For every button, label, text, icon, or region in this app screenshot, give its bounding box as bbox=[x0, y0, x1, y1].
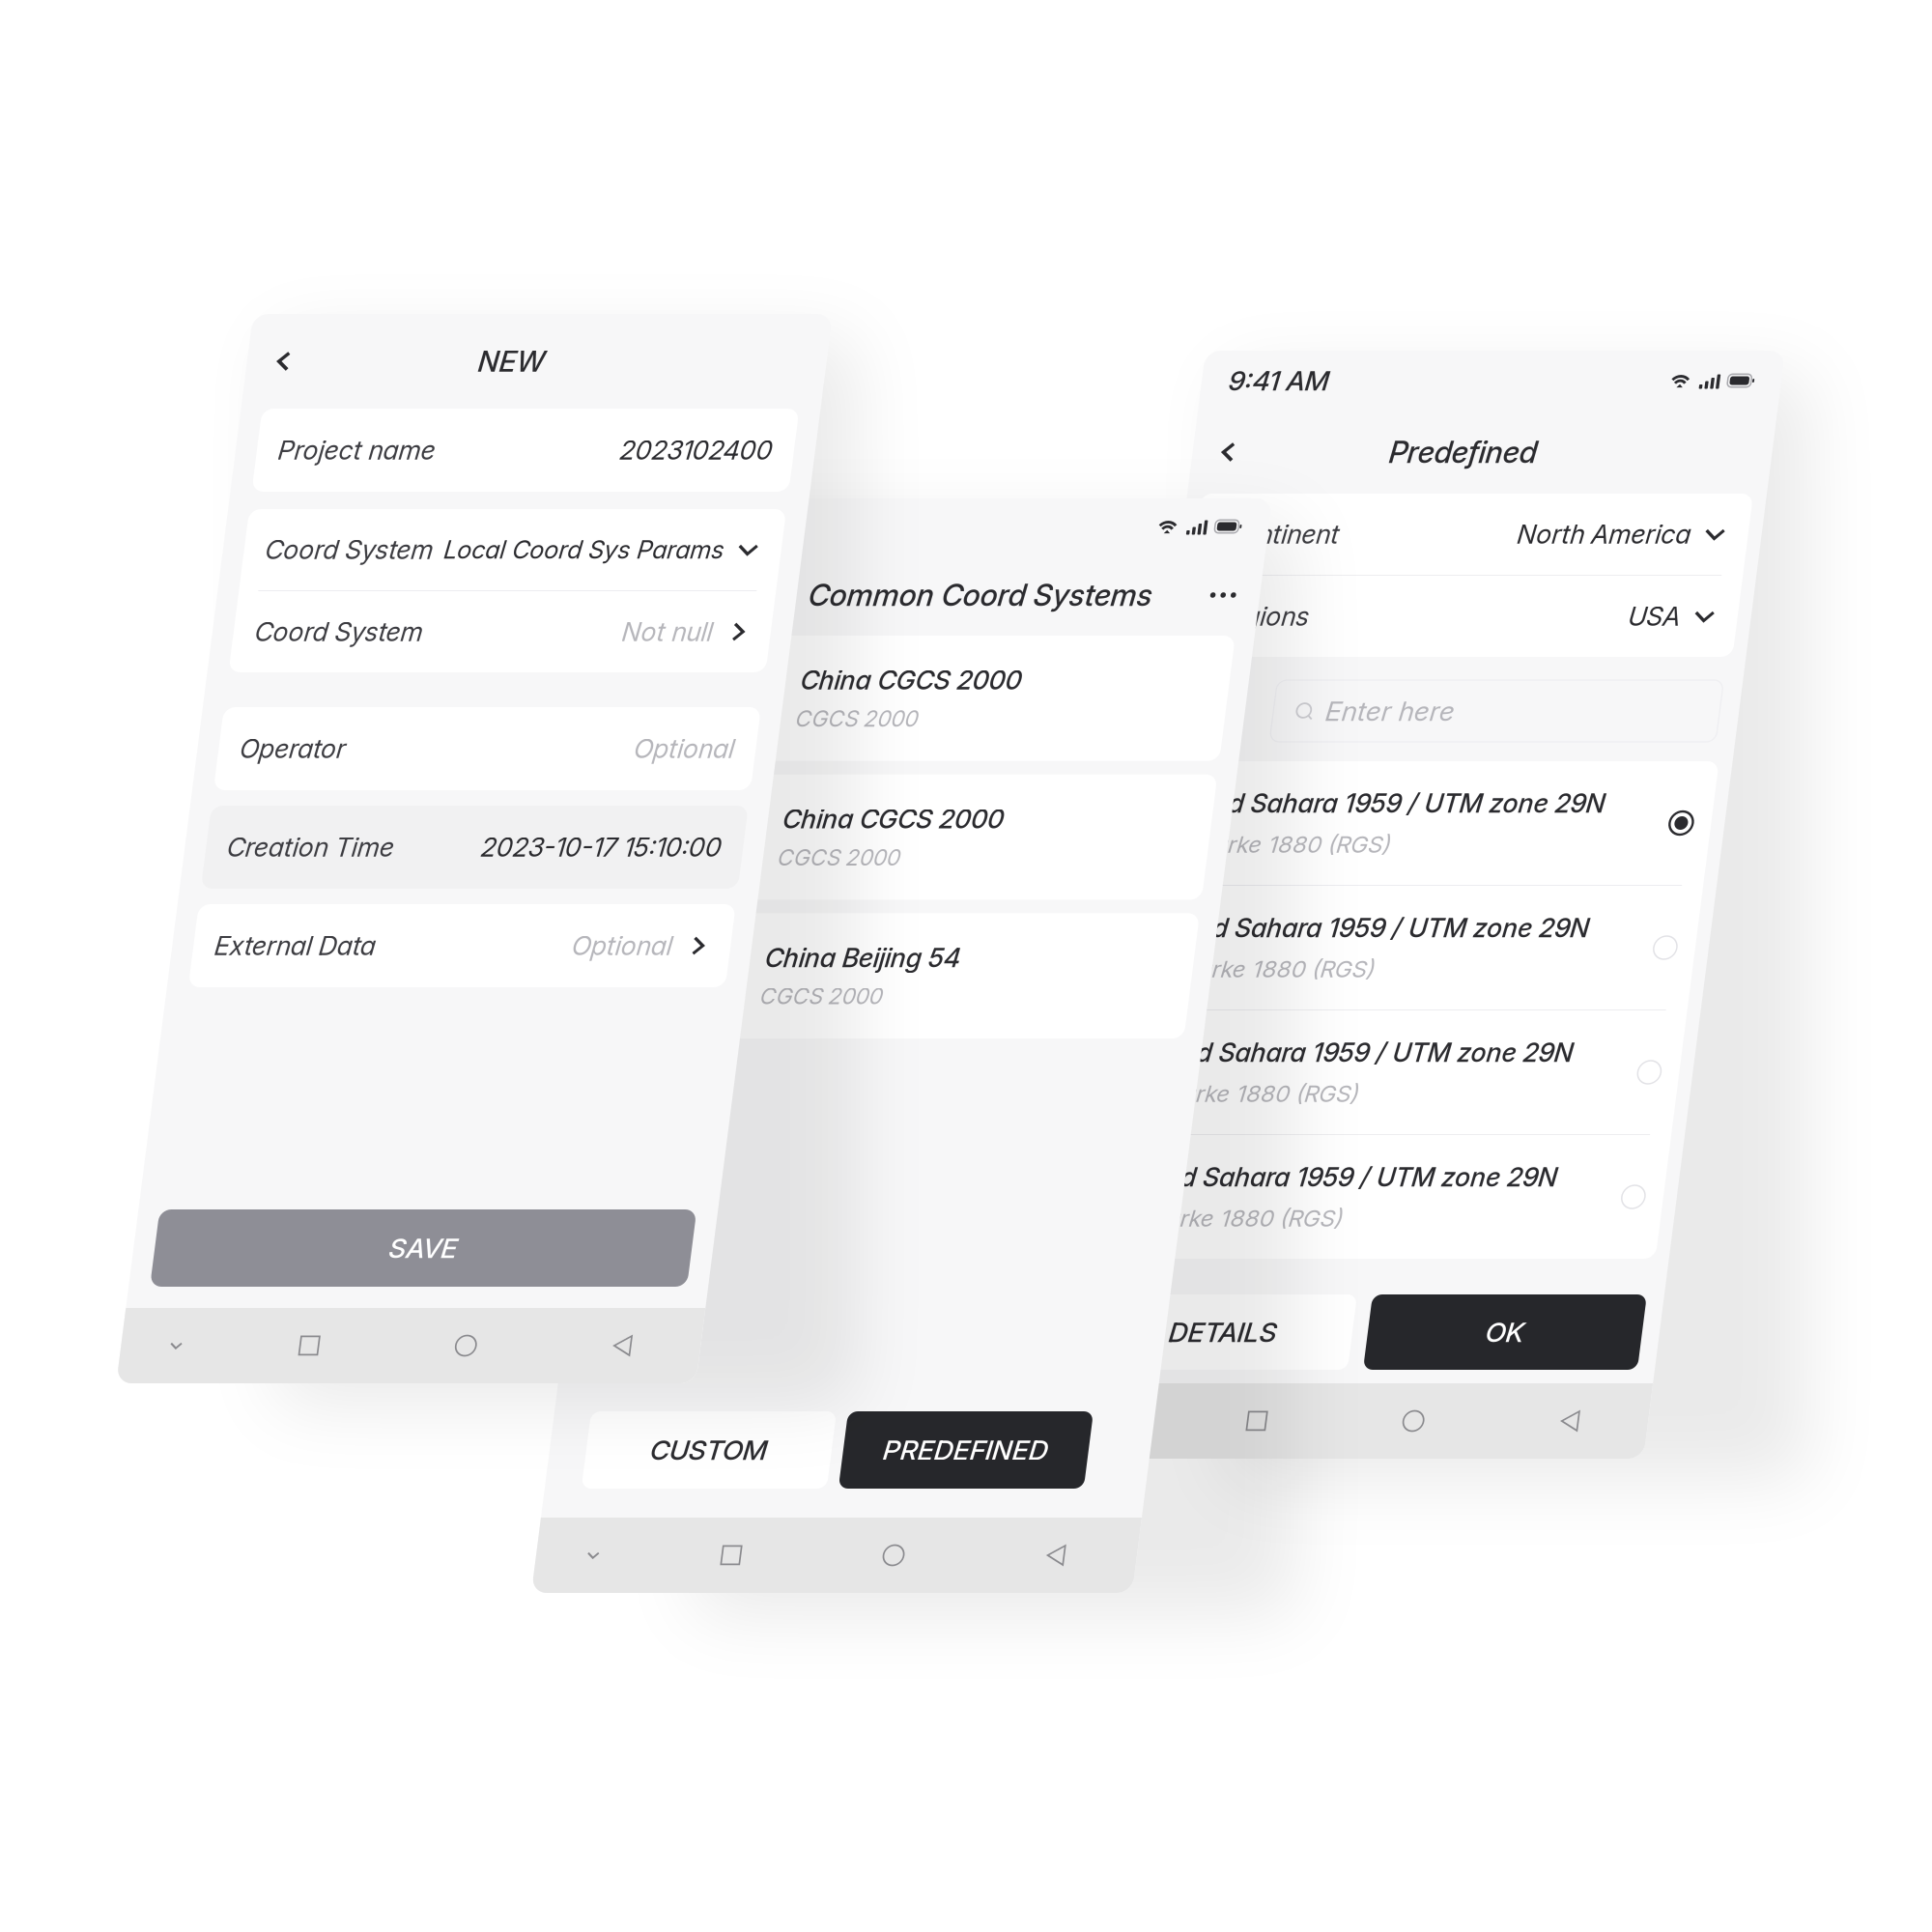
button[interactable]: China CGCS 2000 bbox=[691, 636, 1253, 761]
button[interactable]: OK bbox=[1493, 1294, 1768, 1370]
staticText: Optional bbox=[690, 733, 790, 764]
staticText: Clarke 1880 (RGS) bbox=[1256, 955, 1454, 983]
button[interactable]: Red Sahara 1959 / UTM zone 29N bbox=[1219, 886, 1772, 1009]
button[interactable]: Coord System bbox=[274, 591, 811, 672]
staticText: CGCS 2000 bbox=[824, 983, 947, 1010]
staticText: External Data bbox=[296, 930, 457, 961]
button[interactable]: Recents bbox=[1316, 1397, 1472, 1445]
button[interactable]: Regions bbox=[1219, 576, 1772, 657]
staticText: Red Sahara 1959 / UTM zone 29N bbox=[1256, 1161, 1663, 1193]
staticText: China Beijing 54 bbox=[824, 942, 1019, 973]
staticText: Red Sahara 1959 / UTM zone 29N bbox=[1256, 1037, 1663, 1068]
button[interactable]: Operator bbox=[274, 707, 811, 790]
button[interactable]: Enter here bbox=[1320, 680, 1766, 742]
staticText: Enter here bbox=[1372, 695, 1501, 727]
button[interactable]: Red Sahara 1959 / UTM zone 29N bbox=[1219, 761, 1772, 885]
staticText: PREDEFINED bbox=[1005, 1434, 1170, 1466]
button[interactable]: CUSTOM bbox=[708, 1411, 953, 1489]
staticText: Predefined bbox=[1402, 434, 1550, 470]
staticText: North America bbox=[1541, 519, 1715, 550]
button[interactable]: External Data bbox=[274, 904, 811, 987]
button[interactable]: Continent bbox=[1219, 494, 1772, 575]
staticText: CUSTOM bbox=[772, 1434, 889, 1466]
staticText: Red Sahara 1959 / UTM zone 29N bbox=[1256, 912, 1663, 943]
button[interactable]: China CGCS 2000 bbox=[691, 774, 1253, 900]
staticText: China CGCS 2000 bbox=[824, 803, 1045, 835]
button[interactable]: Home bbox=[520, 1321, 676, 1370]
staticText: Optional bbox=[653, 930, 753, 961]
button[interactable]: More options bbox=[1212, 574, 1259, 616]
button[interactable]: Home bbox=[1472, 1397, 1629, 1445]
staticText: Red Sahara 1959 / UTM zone 29N bbox=[1256, 788, 1663, 819]
staticText: Operator bbox=[296, 733, 402, 764]
button[interactable]: Recents bbox=[786, 1531, 948, 1579]
staticText: CGCS 2000 bbox=[824, 705, 947, 732]
staticText: Not null bbox=[663, 616, 753, 647]
button[interactable]: Back bbox=[267, 338, 313, 384]
staticText: OK bbox=[1611, 1316, 1650, 1349]
staticText: Regions bbox=[1248, 601, 1344, 632]
button[interactable]: PREDEFINED bbox=[965, 1411, 1210, 1489]
staticText: USA bbox=[1662, 601, 1715, 632]
staticText: China CGCS 2000 bbox=[824, 665, 1045, 696]
staticText: Clarke 1880 (RGS) bbox=[1256, 830, 1454, 858]
staticText: 9:41 AM bbox=[1233, 364, 1333, 397]
button[interactable]: Project name bbox=[274, 409, 811, 492]
staticText: 2023-10-17 15:10:00 bbox=[550, 832, 790, 863]
staticText: Coord System bbox=[296, 616, 464, 647]
button[interactable]: China Beijing 54 bbox=[691, 913, 1253, 1039]
button[interactable]: Back bbox=[1219, 430, 1264, 474]
staticText: Clarke 1880 (RGS) bbox=[1256, 1080, 1454, 1108]
button[interactable]: Red Sahara 1959 / UTM zone 29N bbox=[1219, 1010, 1772, 1134]
staticText: Common Coord Systems bbox=[821, 577, 1165, 613]
staticText: Creation Time bbox=[296, 832, 463, 863]
button[interactable]: Hide keyboard bbox=[253, 1321, 363, 1370]
staticText: NEW bbox=[484, 344, 551, 378]
staticText: Clarke 1880 (RGS) bbox=[1256, 1204, 1454, 1232]
staticText: CGCS 2000 bbox=[824, 844, 947, 871]
staticText: Continent bbox=[1248, 519, 1363, 550]
staticText: Coord System bbox=[296, 534, 464, 565]
staticText: 2023102400 bbox=[638, 435, 790, 466]
staticText: DETAILS bbox=[1294, 1316, 1403, 1349]
button[interactable]: Coord System bbox=[274, 509, 811, 590]
button[interactable]: SAVE bbox=[274, 1209, 811, 1287]
button[interactable]: Red Sahara 1959 / UTM zone 29N bbox=[1219, 1135, 1772, 1259]
button[interactable]: Recents bbox=[363, 1321, 520, 1370]
button[interactable]: Hide keyboard bbox=[671, 1531, 786, 1579]
button[interactable]: DETAILS bbox=[1219, 1294, 1478, 1370]
staticText: Local Coord Sys Params bbox=[474, 535, 754, 565]
staticText: Project name bbox=[296, 435, 453, 466]
button[interactable]: Home bbox=[948, 1531, 1110, 1579]
